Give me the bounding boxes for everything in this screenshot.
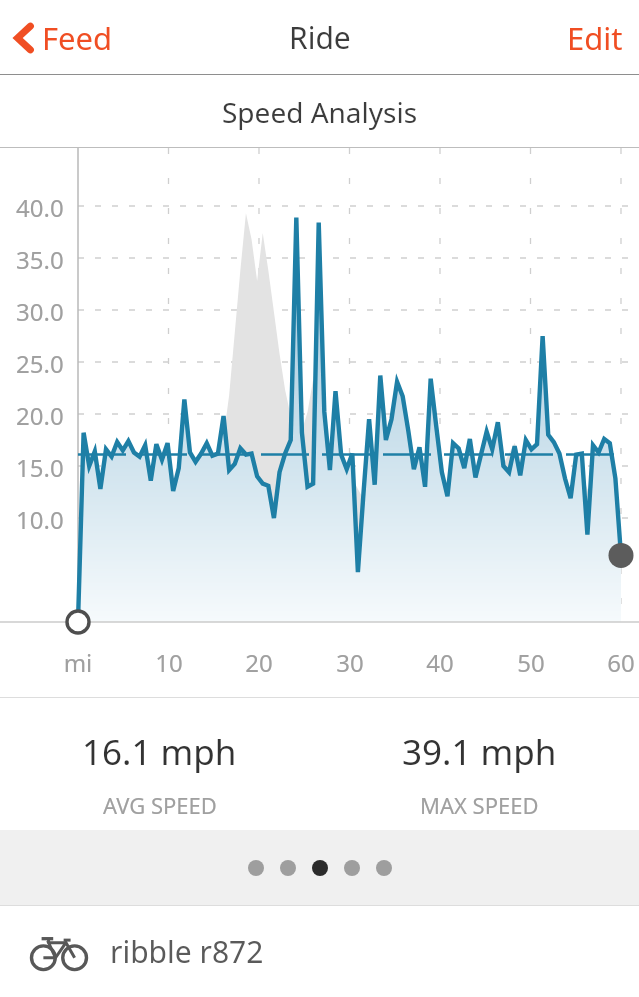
button[interactable]: Page 5	[376, 860, 392, 876]
button[interactable]: Page 3	[312, 860, 328, 876]
staticText: ribble r872	[110, 931, 264, 972]
staticText: 20.0	[16, 399, 64, 432]
staticText: mi	[44, 646, 112, 679]
staticText: 60	[587, 646, 639, 679]
staticText: 39.1 mph	[402, 728, 557, 776]
staticText: Ride	[289, 17, 351, 58]
button[interactable]: ribble r872	[0, 906, 639, 997]
button[interactable]: 16.1 mph	[0, 698, 319, 830]
staticText: Edit	[567, 17, 623, 59]
staticText: 10	[135, 646, 203, 679]
button[interactable]: Feed	[0, 9, 127, 67]
staticText: 15.0	[16, 451, 64, 484]
button[interactable]: 39.1 mph	[319, 698, 639, 830]
staticText: 10.0	[16, 503, 64, 536]
staticText: 20	[225, 646, 293, 679]
staticText: 30	[316, 646, 384, 679]
staticText: 40	[406, 646, 474, 679]
staticText: Feed	[42, 17, 113, 59]
staticText: AVG SPEED	[103, 790, 217, 820]
button[interactable]: Page 1	[248, 860, 264, 876]
staticText: 16.1 mph	[82, 728, 237, 776]
button[interactable]: Edit	[551, 7, 639, 69]
staticText: 30.0	[16, 295, 64, 328]
button[interactable]: Page 4	[344, 860, 360, 876]
staticText: Speed Analysis	[222, 93, 418, 131]
staticText: MAX SPEED	[420, 790, 539, 820]
staticText: 25.0	[16, 347, 64, 380]
button[interactable]: Page 2	[280, 860, 296, 876]
staticText: 40.0	[16, 191, 64, 224]
staticText: 50	[497, 646, 565, 679]
staticText: 35.0	[16, 243, 64, 276]
